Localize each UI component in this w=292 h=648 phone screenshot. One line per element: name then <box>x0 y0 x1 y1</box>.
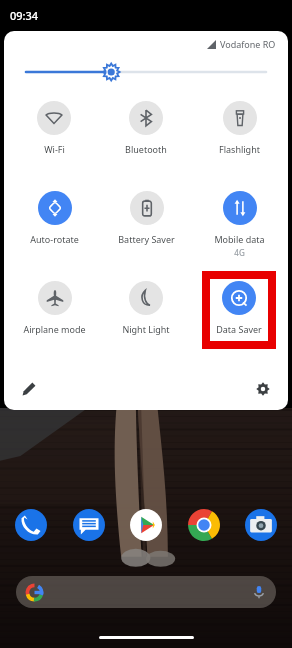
staticText: Vodafone RO <box>220 38 276 50</box>
button[interactable]: Mobile data <box>214 191 265 258</box>
button[interactable]: Airplane mode <box>23 281 86 335</box>
staticText: 4G <box>234 247 245 258</box>
staticText: Flashlight <box>219 143 260 155</box>
staticText: Auto-rotate <box>30 233 79 245</box>
staticText: Mobile data <box>214 233 265 245</box>
button[interactable]: Night Light <box>122 281 170 335</box>
button[interactable]: Wi-Fi <box>37 101 71 155</box>
button[interactable]: Settings <box>250 376 276 402</box>
staticText: Data Saver <box>216 323 262 335</box>
button[interactable]: Messages <box>72 508 106 542</box>
button[interactable]: Chrome <box>187 508 221 542</box>
button[interactable] <box>16 576 276 608</box>
button[interactable]: Play Store <box>129 508 163 542</box>
staticText: Wi-Fi <box>44 143 65 155</box>
staticText: Battery Saver <box>118 233 175 245</box>
button[interactable]: Edit tiles <box>16 376 42 402</box>
staticText: Airplane mode <box>23 323 86 335</box>
button[interactable]: Battery Saver <box>118 191 175 245</box>
button[interactable]: Auto-rotate <box>30 191 79 245</box>
staticText: Night Light <box>122 323 170 335</box>
staticText: 09:34 <box>10 8 39 23</box>
staticText: Bluetooth <box>125 143 167 155</box>
button[interactable]: Flashlight <box>219 101 260 155</box>
button[interactable]: Bluetooth <box>125 101 167 155</box>
button[interactable]: Camera <box>244 508 278 542</box>
button[interactable]: Phone <box>14 508 48 542</box>
button[interactable]: Brightness <box>26 57 266 87</box>
button[interactable]: Data Saver <box>216 281 262 335</box>
